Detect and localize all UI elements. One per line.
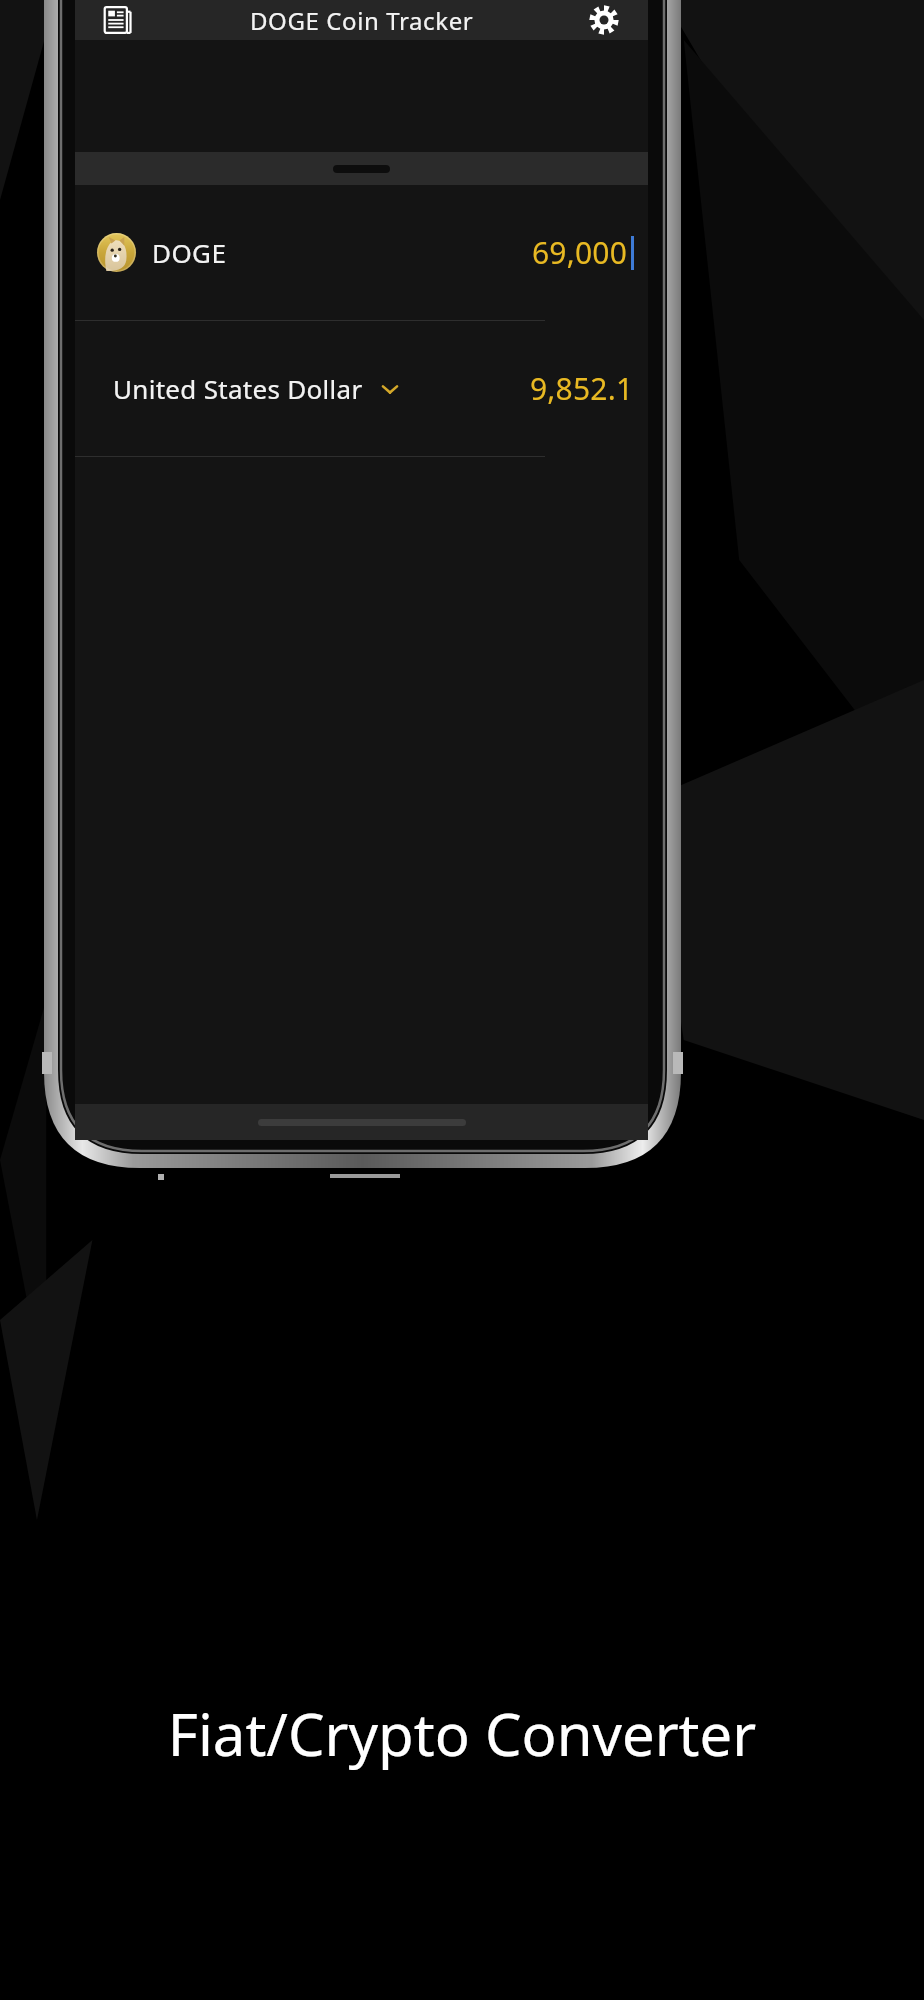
button[interactable]: United States Dollar	[75, 321, 648, 456]
staticText: DOGE Coin Tracker	[250, 4, 474, 37]
button[interactable]: DOGE	[75, 185, 648, 320]
button[interactable]: Settings	[582, 0, 626, 40]
staticText: Fiat/Crypto Converter	[0, 1694, 924, 1773]
button[interactable]: News	[97, 0, 137, 40]
staticText: 69,000	[532, 232, 628, 273]
staticText: DOGE	[152, 235, 227, 270]
staticText: United States Dollar	[113, 371, 363, 406]
staticText: 9,852.1	[530, 368, 634, 409]
